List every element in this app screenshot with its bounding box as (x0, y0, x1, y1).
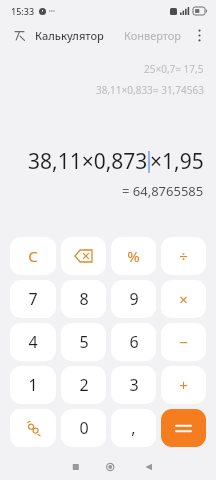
button[interactable]: ÷ (161, 237, 206, 275)
button[interactable]: 0 (61, 409, 106, 447)
staticText: 2 (79, 374, 89, 396)
button[interactable]: 25×0,7= 17,5 (144, 62, 204, 76)
button[interactable]: More options (188, 24, 210, 46)
button[interactable]: % (111, 237, 156, 275)
button[interactable]: Backspace (61, 237, 106, 275)
staticText: 0 (79, 417, 89, 439)
button[interactable]: 2 (61, 366, 106, 404)
staticText: 1 (28, 374, 38, 396)
staticText: % (127, 246, 140, 266)
staticText: ÷ (179, 246, 188, 266)
staticText: , (131, 417, 136, 439)
button[interactable]: − (161, 323, 206, 361)
button[interactable]: 38,11×0,833= 31,74563 (96, 83, 204, 97)
staticText: = 64,8765585 (122, 182, 204, 200)
staticText: 9 (129, 288, 139, 310)
button[interactable]: Unit converter (10, 409, 56, 447)
staticText: 38,11×0,873 (28, 147, 148, 176)
staticText: × (179, 289, 188, 309)
button[interactable]: 6 (111, 323, 156, 361)
staticText: Конвертор (124, 28, 182, 43)
staticText: 8 (79, 288, 89, 310)
staticText: 5 (79, 331, 89, 353)
staticText: + (179, 375, 188, 395)
button[interactable]: 7 (10, 280, 56, 318)
button[interactable] (161, 409, 206, 447)
staticText: 4 (28, 331, 38, 353)
staticText: 6 (129, 331, 139, 353)
staticText: 3 (129, 374, 139, 396)
button[interactable]: 5 (61, 323, 106, 361)
staticText: − (179, 332, 188, 352)
staticText: Калькулятор (35, 28, 104, 43)
staticText: C (28, 246, 38, 266)
button[interactable]: 3 (111, 366, 156, 404)
button[interactable]: + (161, 366, 206, 404)
staticText: 7 (28, 288, 38, 310)
staticText: 15:33 (11, 5, 35, 17)
button[interactable]: 8 (61, 280, 106, 318)
button[interactable]: , (111, 409, 156, 447)
button[interactable]: Конвертор (118, 25, 188, 46)
button[interactable]: × (161, 280, 206, 318)
button[interactable]: 4 (10, 323, 56, 361)
button[interactable]: 9 (111, 280, 156, 318)
button[interactable]: Modes (8, 24, 30, 46)
button[interactable]: 1 (10, 366, 56, 404)
staticText: ×1,95 (150, 147, 204, 176)
button[interactable]: C (10, 237, 56, 275)
button[interactable]: Калькулятор (29, 25, 110, 46)
